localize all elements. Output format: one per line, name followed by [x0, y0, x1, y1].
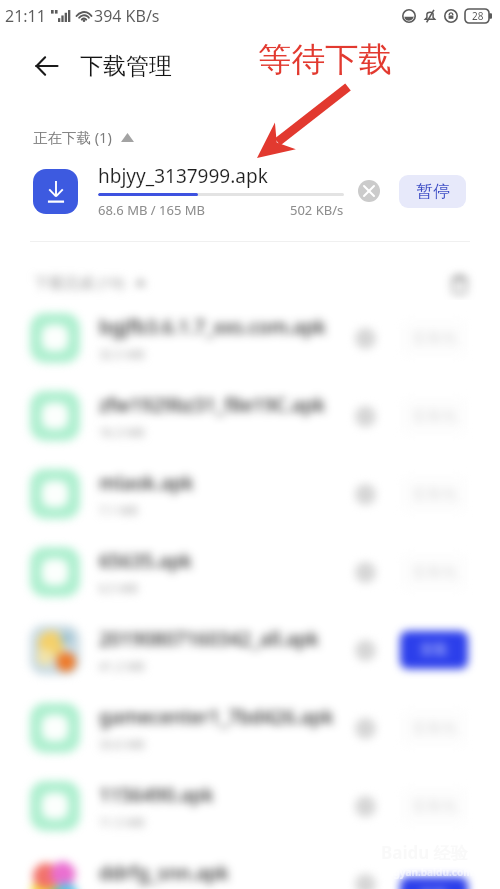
staticText: 等待下载	[258, 39, 392, 81]
staticText: 11.5 MB	[99, 814, 145, 830]
button[interactable]: 暂停	[399, 175, 466, 208]
staticText: 21:11	[5, 5, 46, 27]
button[interactable]: Cancel download	[358, 180, 380, 202]
staticText: 65635.apk	[99, 548, 192, 574]
button[interactable]: hbjyy_3137999.apk	[0, 163, 500, 219]
staticText: 32.5 MB	[99, 346, 145, 362]
staticText: 1156490.apk	[99, 782, 214, 808]
staticText: 6.5 MB	[99, 580, 138, 596]
staticText: 502 KB/s	[290, 201, 344, 219]
staticText: mlaok.apk	[99, 470, 194, 496]
staticText: zfw1929bz31_f8e19C.apk	[99, 392, 326, 418]
staticText: jingyan.baidu.com	[381, 865, 473, 879]
staticText: 41.2 MB	[99, 658, 145, 674]
staticText: 正在下载 (1)	[33, 127, 112, 147]
staticText: 33.6 MB	[99, 736, 145, 752]
staticText: 暂停	[416, 181, 450, 202]
staticText: 7.1 MB	[99, 502, 138, 518]
button[interactable]: Back	[18, 40, 74, 92]
staticText: 下载完成 (19)	[34, 272, 125, 292]
staticText: hbjyy_3137999.apk	[98, 163, 268, 189]
staticText: 下载管理	[80, 52, 172, 81]
staticText: 28	[472, 9, 484, 23]
staticText: bgjfb3.6.1.7_xxs.com.apk	[99, 314, 326, 340]
staticText: gamecenter1_7bd426.apk	[99, 704, 334, 730]
staticText: 68.6 MB / 165 MB	[98, 201, 205, 219]
staticText: 394 KB/s	[94, 5, 160, 27]
staticText: 安装	[420, 641, 448, 659]
staticText: 20190807160342_all.apk	[99, 626, 319, 652]
staticText: 16.3 MB	[99, 424, 145, 440]
staticText: ddrfg_snn.apk	[99, 860, 229, 886]
staticText: 安装	[420, 887, 448, 889]
